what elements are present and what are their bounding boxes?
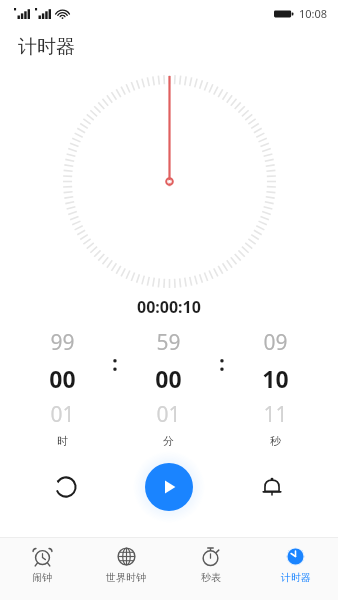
button[interactable]: Ringtone bbox=[252, 467, 292, 507]
staticText: 10 bbox=[262, 363, 289, 394]
staticText: 10:08 bbox=[299, 6, 328, 21]
staticText: 09 bbox=[263, 328, 288, 357]
staticText: 世界时钟 bbox=[106, 571, 146, 584]
staticText: 计时器 bbox=[281, 571, 311, 584]
button[interactable]: 59 bbox=[128, 328, 209, 448]
button[interactable]: Reset bbox=[46, 467, 86, 507]
staticText: 99 bbox=[50, 328, 75, 357]
staticText: 秒 bbox=[270, 434, 281, 448]
staticText: 闹钟 bbox=[32, 571, 52, 584]
staticText: 01 bbox=[156, 400, 181, 429]
button[interactable]: Start bbox=[145, 463, 193, 511]
staticText: 时 bbox=[57, 434, 68, 448]
staticText: 计时器 bbox=[18, 35, 75, 59]
staticText: 秒表 bbox=[201, 571, 221, 584]
staticText: 00:00:10 bbox=[137, 296, 201, 318]
staticText: 01 bbox=[50, 400, 75, 429]
button[interactable]: 闹钟 bbox=[0, 538, 84, 600]
staticText: 00 bbox=[155, 363, 182, 394]
staticText: 11 bbox=[263, 400, 288, 429]
button[interactable]: 99 bbox=[22, 328, 102, 448]
staticText: 59 bbox=[156, 328, 181, 357]
staticText: 00 bbox=[49, 363, 76, 394]
staticText: 分 bbox=[163, 434, 174, 448]
button[interactable]: 计时器 bbox=[253, 538, 338, 600]
button[interactable]: 09 bbox=[235, 328, 316, 448]
button[interactable]: 秒表 bbox=[168, 538, 253, 600]
button[interactable]: 世界时钟 bbox=[84, 538, 168, 600]
staticText: : bbox=[219, 349, 225, 378]
staticText: : bbox=[112, 349, 118, 378]
